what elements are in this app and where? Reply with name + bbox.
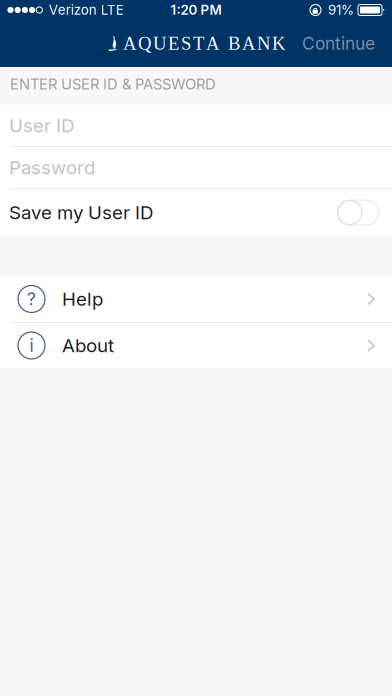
staticText: Help (62, 288, 103, 310)
staticText: Password (9, 156, 95, 179)
staticText: About (62, 334, 114, 357)
staticText: LTE (101, 2, 124, 18)
button[interactable]: i (0, 323, 392, 368)
button[interactable]: Continue (292, 21, 392, 66)
staticText: User ID (9, 114, 74, 137)
staticText: Verizon (49, 2, 97, 18)
staticText: Continue (302, 33, 375, 54)
staticText: 1:20 PM (170, 2, 221, 18)
button[interactable]: ? (0, 276, 392, 322)
staticText: ENTER USER ID & PASSWORD (10, 75, 216, 93)
staticText: ? (27, 288, 36, 309)
staticText: i (29, 335, 33, 356)
staticText: Save my User ID (9, 201, 153, 224)
button[interactable]: Save my User ID (337, 199, 379, 225)
staticText: A Q U E S T A B A N K (123, 33, 285, 54)
staticText: 91% (328, 2, 354, 18)
